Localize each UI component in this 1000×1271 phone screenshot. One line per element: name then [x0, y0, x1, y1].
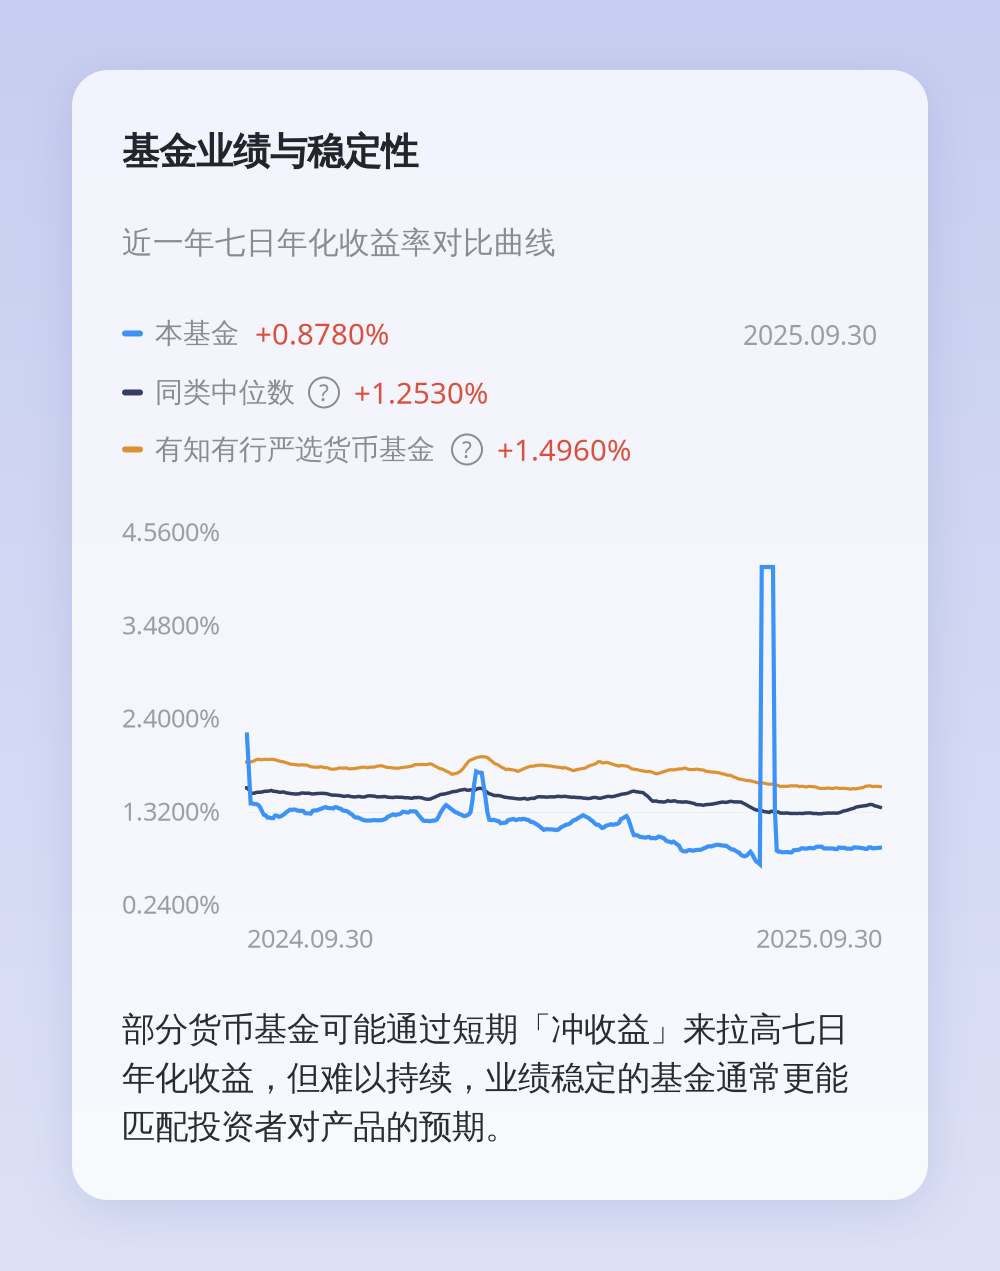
staticText: +1.2530%	[354, 373, 488, 412]
staticText: 2025.09.30	[756, 921, 882, 955]
staticText: 同类中位数	[155, 375, 295, 410]
staticText: 4.5600%	[122, 515, 220, 548]
staticText: 部分货币基金可能通过短期「冲收益」来拉高七日	[122, 1009, 848, 1050]
staticText: 年化收益，但难以持续，业绩稳定的基金通常更能	[122, 1058, 848, 1099]
staticText: 1.3200%	[122, 794, 220, 828]
staticText: ?	[319, 377, 329, 407]
staticText: 0.2400%	[122, 887, 220, 921]
staticText: 基金业绩与稳定性	[122, 129, 418, 175]
button[interactable]: 关于同类中位数的说明	[309, 377, 339, 407]
staticText: 有知有行严选货币基金	[155, 432, 435, 467]
staticText: 本基金	[155, 316, 239, 351]
staticText: 近一年七日年化收益率对比曲线	[122, 224, 556, 262]
staticText: 2.4000%	[122, 701, 220, 734]
staticText: ?	[462, 434, 472, 464]
staticText: 2025.09.30	[743, 317, 877, 352]
staticText: 2024.09.30	[247, 921, 373, 955]
staticText: +0.8780%	[255, 314, 389, 353]
button[interactable]: 关于有知有行严选货币基金的说明	[452, 434, 482, 464]
staticText: +1.4960%	[497, 430, 631, 469]
staticText: 3.4800%	[122, 608, 220, 641]
staticText: 匹配投资者对产品的预期。	[122, 1106, 518, 1147]
